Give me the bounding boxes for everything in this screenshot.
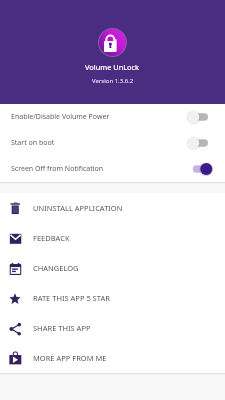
staticText: Enable/Disable Volume Power: [11, 112, 110, 122]
staticText: MORE APP FROM ME: [33, 353, 107, 363]
staticText: FEEDBACK: [33, 233, 70, 243]
staticText: CHANGELOG: [33, 263, 79, 273]
staticText: Version 1.3.6.2: [92, 77, 134, 85]
button[interactable]: Screen Off from Notification: [0, 156, 225, 182]
button[interactable]: UNINSTALL APPLICATION: [0, 193, 225, 223]
button[interactable]: Enable/Disable Volume Power: [0, 104, 225, 130]
staticText: Start on boot: [11, 138, 55, 148]
staticText: RATE THIS APP 5 STAR: [33, 293, 110, 303]
button[interactable]: RATE THIS APP 5 STAR: [0, 283, 225, 313]
button[interactable]: CHANGELOG: [0, 253, 225, 283]
button[interactable]: SHARE THIS APP: [0, 313, 225, 343]
staticText: Volume UnLock: [85, 62, 140, 72]
staticText: SHARE THIS APP: [33, 323, 91, 333]
button[interactable]: FEEDBACK: [0, 223, 225, 253]
button[interactable]: Start on boot: [0, 130, 225, 156]
staticText: Screen Off from Notification: [11, 164, 104, 174]
button[interactable]: MORE APP FROM ME: [0, 343, 225, 373]
staticText: UNINSTALL APPLICATION: [33, 203, 123, 213]
